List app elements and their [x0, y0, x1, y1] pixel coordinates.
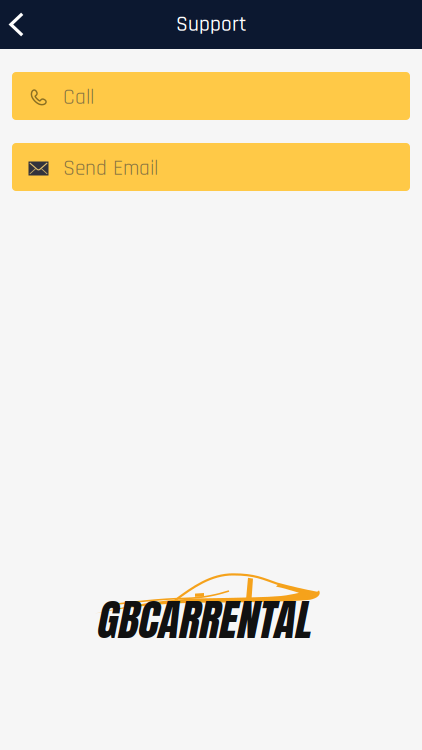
staticText: Support [176, 11, 246, 38]
button[interactable]: Back [0, 0, 38, 49]
button[interactable]: Send Email [12, 143, 410, 191]
button[interactable]: Call [12, 72, 410, 120]
staticText: Call [63, 84, 94, 111]
staticText: GBCARRENTAL [95, 588, 310, 652]
staticText: Send Email [63, 155, 158, 182]
